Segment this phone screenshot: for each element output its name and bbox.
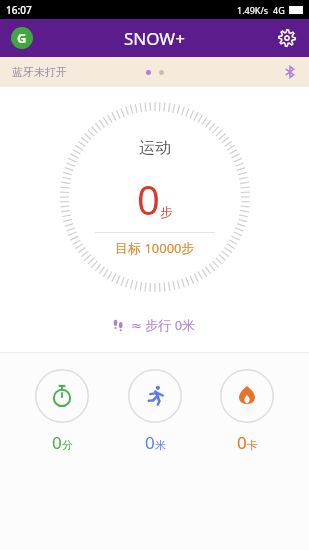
button[interactable]: ≈ 步行 0米 <box>113 316 196 334</box>
button[interactable]: Settings <box>275 26 299 50</box>
button[interactable]: 0 <box>216 365 278 458</box>
staticText: 0 <box>145 431 155 454</box>
staticText: SNOW+ <box>124 27 185 50</box>
staticText: 1.49K/s <box>237 4 269 16</box>
staticText: 目标 10000步 <box>115 239 195 257</box>
staticText: 16:07 <box>6 3 32 17</box>
staticText: 0 <box>52 431 62 454</box>
staticText: 步 <box>160 204 173 220</box>
staticText: G <box>17 29 27 47</box>
staticText: 蓝牙未打开 <box>12 65 67 79</box>
button[interactable]: 0 <box>31 365 93 458</box>
button[interactable]: Bluetooth <box>281 63 299 81</box>
staticText: 0 <box>237 431 247 454</box>
staticText: 运动 <box>139 138 171 158</box>
staticText: 分 <box>62 438 73 452</box>
button[interactable]: Profile <box>10 26 34 50</box>
staticText: ≈ 步行 0米 <box>131 316 196 334</box>
button[interactable]: 0 <box>124 365 186 458</box>
staticText: 0 <box>137 172 160 226</box>
staticText: 米 <box>155 438 166 452</box>
staticText: 4G <box>273 4 285 16</box>
staticText: 卡 <box>247 438 258 452</box>
